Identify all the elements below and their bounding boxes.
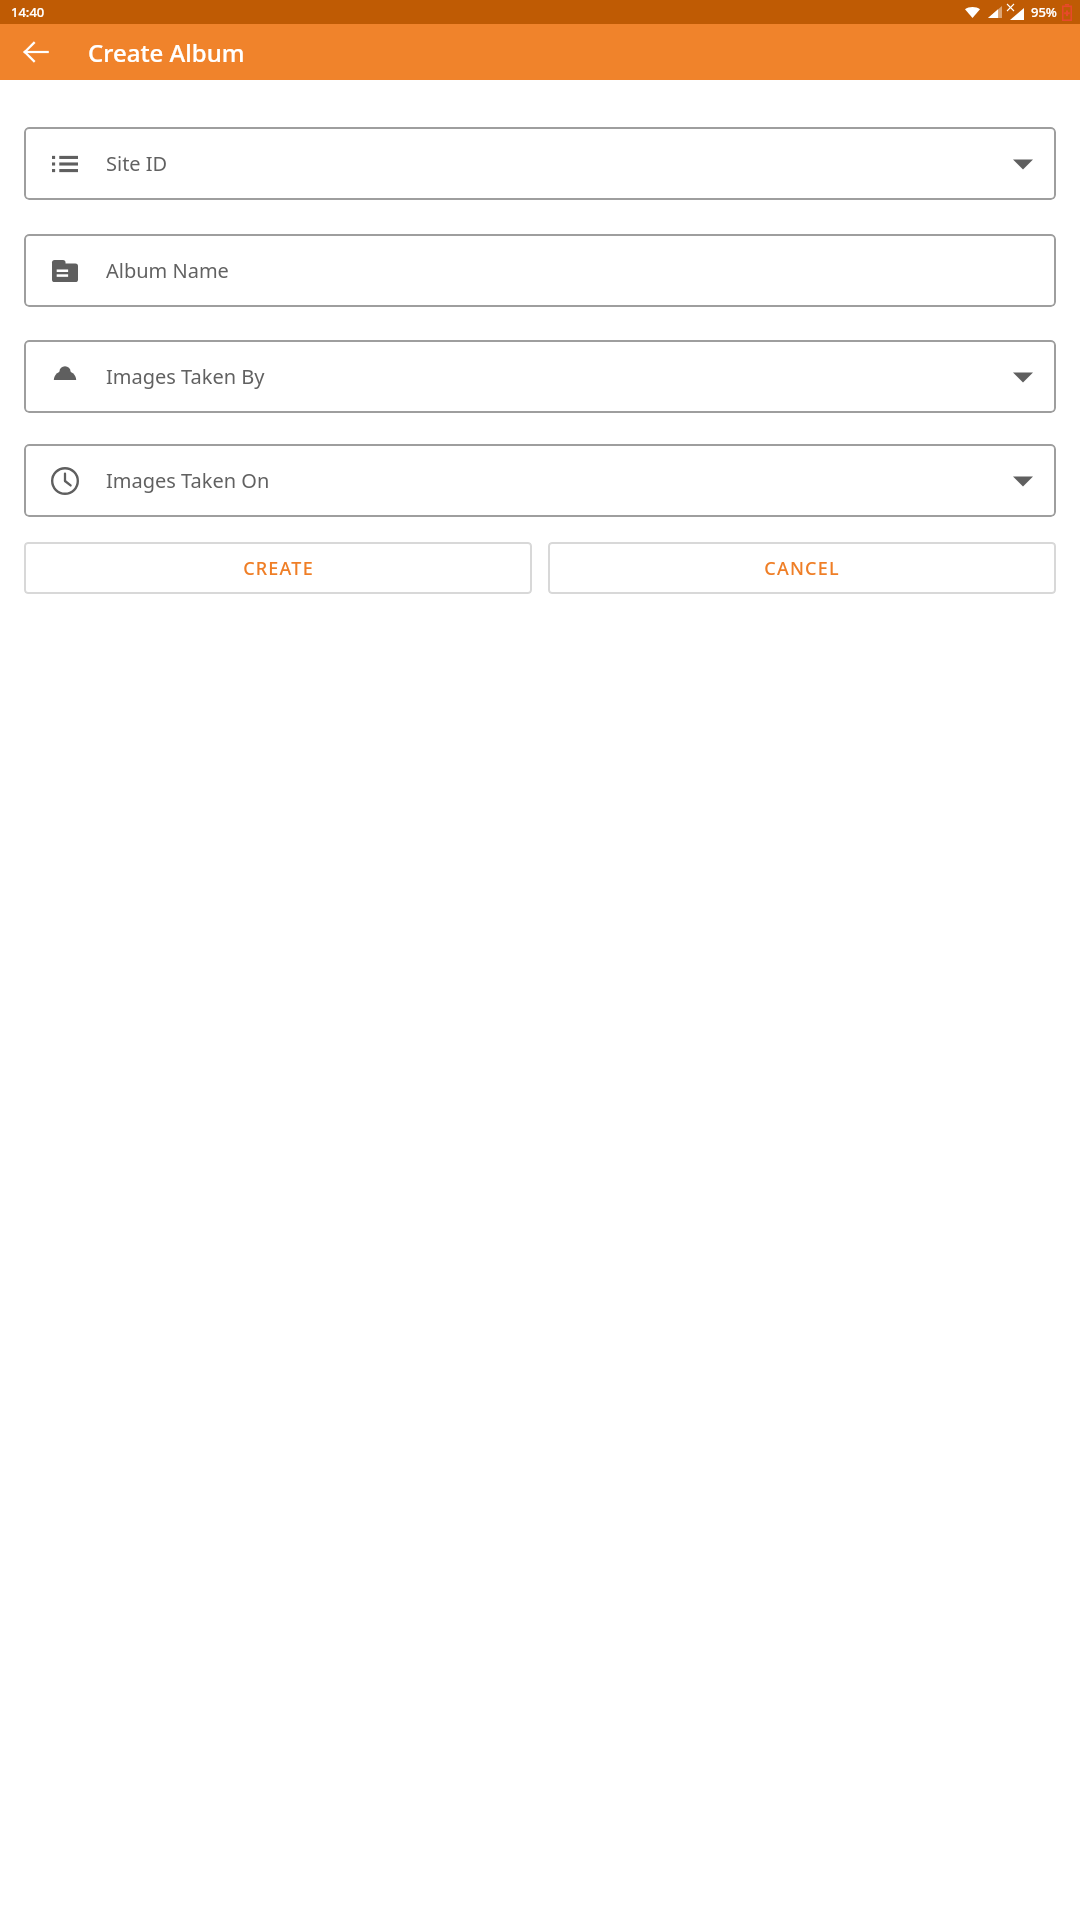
staticText: Images Taken By <box>106 363 990 390</box>
button[interactable]: Images Taken On <box>24 444 1056 517</box>
button[interactable]: Album Name <box>24 234 1056 307</box>
button[interactable]: CANCEL <box>548 542 1056 594</box>
staticText: CREATE <box>243 556 314 581</box>
staticText: CANCEL <box>764 556 840 581</box>
staticText: 95% <box>1031 3 1057 21</box>
button[interactable]: Back <box>12 28 60 76</box>
staticText: Site ID <box>106 150 990 177</box>
button[interactable]: Images Taken By <box>24 340 1056 413</box>
button[interactable]: CREATE <box>24 542 532 594</box>
staticText: Images Taken On <box>106 467 990 494</box>
staticText: 14:40 <box>11 3 45 21</box>
button[interactable]: Site ID <box>24 127 1056 200</box>
staticText: Create Album <box>88 36 245 69</box>
staticText: Album Name <box>106 257 1036 284</box>
